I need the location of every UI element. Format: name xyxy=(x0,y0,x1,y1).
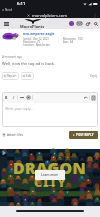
staticText: Age: xyxy=(63,40,69,43)
button[interactable]: Alerts xyxy=(85,21,90,26)
staticText: Edit xyxy=(26,74,32,78)
staticText: Well, now the tag ad is back. xyxy=(2,61,56,66)
staticText: Socialpoint xyxy=(44,184,56,187)
staticText: New Jersey xyxy=(36,43,50,46)
button[interactable]: Bold xyxy=(3,93,10,102)
staticText: Dec 12, 2021 xyxy=(33,37,50,40)
staticText: Learn more xyxy=(41,173,59,177)
button[interactable]: Attach files xyxy=(2,132,24,138)
staticText: PLANT SCIENCE FORUM xyxy=(24,29,42,30)
staticText: DRAGON xyxy=(13,157,87,179)
staticText: B xyxy=(5,95,8,100)
staticText: Reactions: xyxy=(23,40,36,43)
button[interactable]: Undo xyxy=(82,93,89,102)
staticText: 64 xyxy=(70,40,74,43)
button[interactable]: Menu xyxy=(2,20,10,28)
button[interactable]: POST REPLY xyxy=(69,131,98,139)
staticText: Write your reply... xyxy=(5,106,34,111)
button[interactable]: Horizontal rule xyxy=(18,93,25,102)
button[interactable]: Insert xyxy=(25,93,32,102)
staticText: MacroPlants xyxy=(20,24,45,29)
staticText: I xyxy=(13,95,15,100)
staticText: POST REPLY xyxy=(76,133,94,137)
staticText: Report xyxy=(7,74,17,78)
staticText: 75 xyxy=(37,40,41,43)
button[interactable]: Messages xyxy=(77,21,82,26)
staticText: neo-emperor-eagle xyxy=(23,31,55,35)
staticText: Attach files xyxy=(7,133,24,137)
staticText: 6:11 xyxy=(17,1,26,7)
staticText: 100 xyxy=(78,37,83,40)
button[interactable]: Search xyxy=(93,21,98,26)
staticText: Joined: xyxy=(23,37,32,40)
staticText: Location: xyxy=(23,43,35,46)
staticText: A moment ago xyxy=(2,55,23,59)
staticText: Messages: xyxy=(63,37,77,40)
button[interactable]: Report xyxy=(2,72,19,80)
staticText: Reply xyxy=(90,74,98,78)
button[interactable]: More options xyxy=(92,13,97,18)
staticText: marvolplsters.com xyxy=(32,13,67,18)
staticText: CITY xyxy=(34,173,67,191)
button[interactable]: Edit xyxy=(21,72,34,80)
button[interactable]: Account xyxy=(69,21,74,26)
button[interactable]: Italic xyxy=(10,93,17,102)
button[interactable]: Learn more xyxy=(35,170,65,180)
button[interactable]: Preview xyxy=(90,93,97,102)
staticText: Nerd xyxy=(5,8,12,12)
